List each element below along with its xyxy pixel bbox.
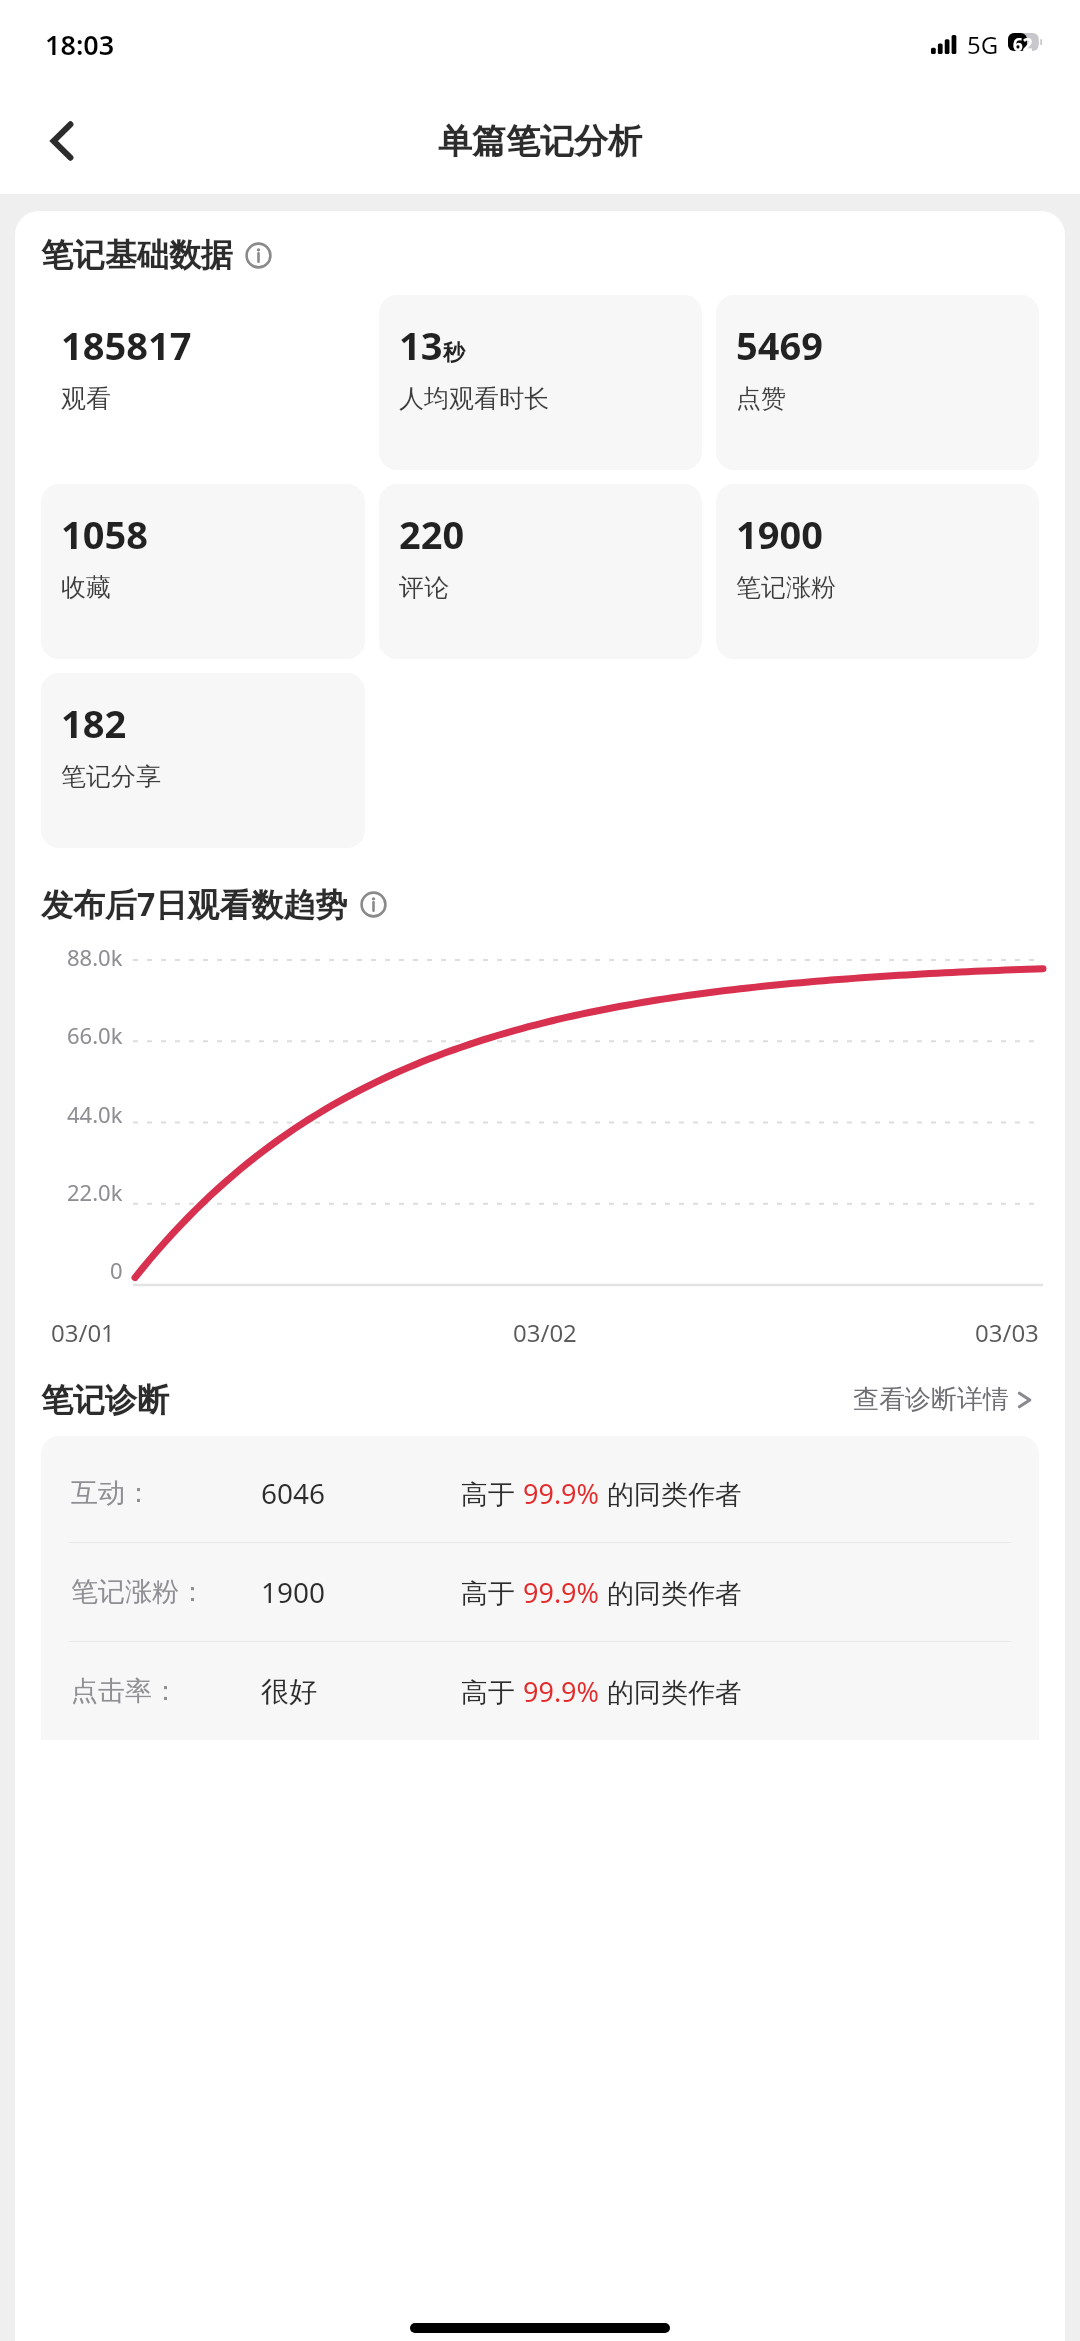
staticText: 62: [1013, 33, 1033, 56]
button[interactable]: 220: [379, 484, 702, 659]
staticText: 秒: [443, 339, 465, 367]
staticText: 6046: [261, 1474, 326, 1512]
staticText: 笔记诊断: [41, 1380, 169, 1420]
staticText: 44.0k: [67, 1099, 123, 1129]
staticText: 13: [399, 319, 443, 371]
button[interactable]: 互动：: [41, 1444, 1039, 1542]
staticText: 5469: [736, 319, 823, 371]
staticText: 高于: [461, 1574, 523, 1611]
staticText: 查看诊断详情: [853, 1383, 1009, 1416]
staticText: 很好: [261, 1674, 317, 1709]
button[interactable]: 查看诊断详情: [847, 1377, 1039, 1422]
staticText: 的同类作者: [600, 1574, 743, 1611]
staticText: 笔记涨粉: [736, 572, 836, 603]
staticText: 5G: [967, 28, 999, 61]
staticText: 观看: [61, 383, 111, 414]
staticText: 的同类作者: [600, 1475, 743, 1512]
staticText: 收藏: [61, 572, 111, 603]
button[interactable]: 笔记涨粉：: [41, 1543, 1039, 1641]
staticText: 笔记涨粉：: [71, 1575, 206, 1609]
staticText: 185817: [61, 319, 192, 371]
staticText: 发布后7日观看数趋势: [41, 882, 348, 926]
staticText: 0: [110, 1255, 123, 1285]
staticText: 笔记分享: [61, 761, 161, 792]
staticText: 人均观看时长: [399, 383, 549, 414]
staticText: 66.0k: [67, 1020, 123, 1050]
staticText: 1900: [261, 1573, 326, 1611]
staticText: 1900: [736, 508, 823, 560]
staticText: 评论: [399, 572, 449, 603]
staticText: 03/01: [51, 1316, 115, 1349]
staticText: 88.0k: [67, 942, 123, 972]
staticText: 的同类作者: [600, 1673, 743, 1710]
staticText: 高于: [461, 1475, 523, 1512]
button[interactable]: 5469: [716, 295, 1039, 470]
staticText: 点击率：: [71, 1674, 179, 1708]
button[interactable]: 182: [41, 673, 365, 848]
staticText: 99.9%: [523, 1673, 600, 1710]
button[interactable]: 1058: [41, 484, 365, 659]
staticText: 单篇笔记分析: [438, 120, 642, 163]
staticText: 03/02: [513, 1316, 577, 1349]
button[interactable]: 1900: [716, 484, 1039, 659]
staticText: 高于: [461, 1673, 523, 1710]
staticText: 笔记基础数据: [41, 235, 233, 275]
button[interactable]: Back: [30, 110, 92, 172]
staticText: 99.9%: [523, 1574, 600, 1611]
staticText: 99.9%: [523, 1475, 600, 1512]
button[interactable]: Info: [360, 891, 387, 918]
staticText: 220: [399, 508, 465, 560]
staticText: 22.0k: [67, 1177, 123, 1207]
staticText: 18:03: [45, 26, 115, 63]
staticText: 182: [61, 697, 127, 749]
staticText: 点赞: [736, 383, 786, 414]
button[interactable]: 点击率：: [41, 1642, 1039, 1740]
button[interactable]: Info: [245, 242, 272, 269]
button[interactable]: 13: [379, 295, 702, 470]
staticText: 1058: [61, 508, 148, 560]
button[interactable]: 185817: [41, 295, 365, 470]
staticText: 03/03: [975, 1316, 1039, 1349]
staticText: 互动：: [71, 1476, 152, 1510]
